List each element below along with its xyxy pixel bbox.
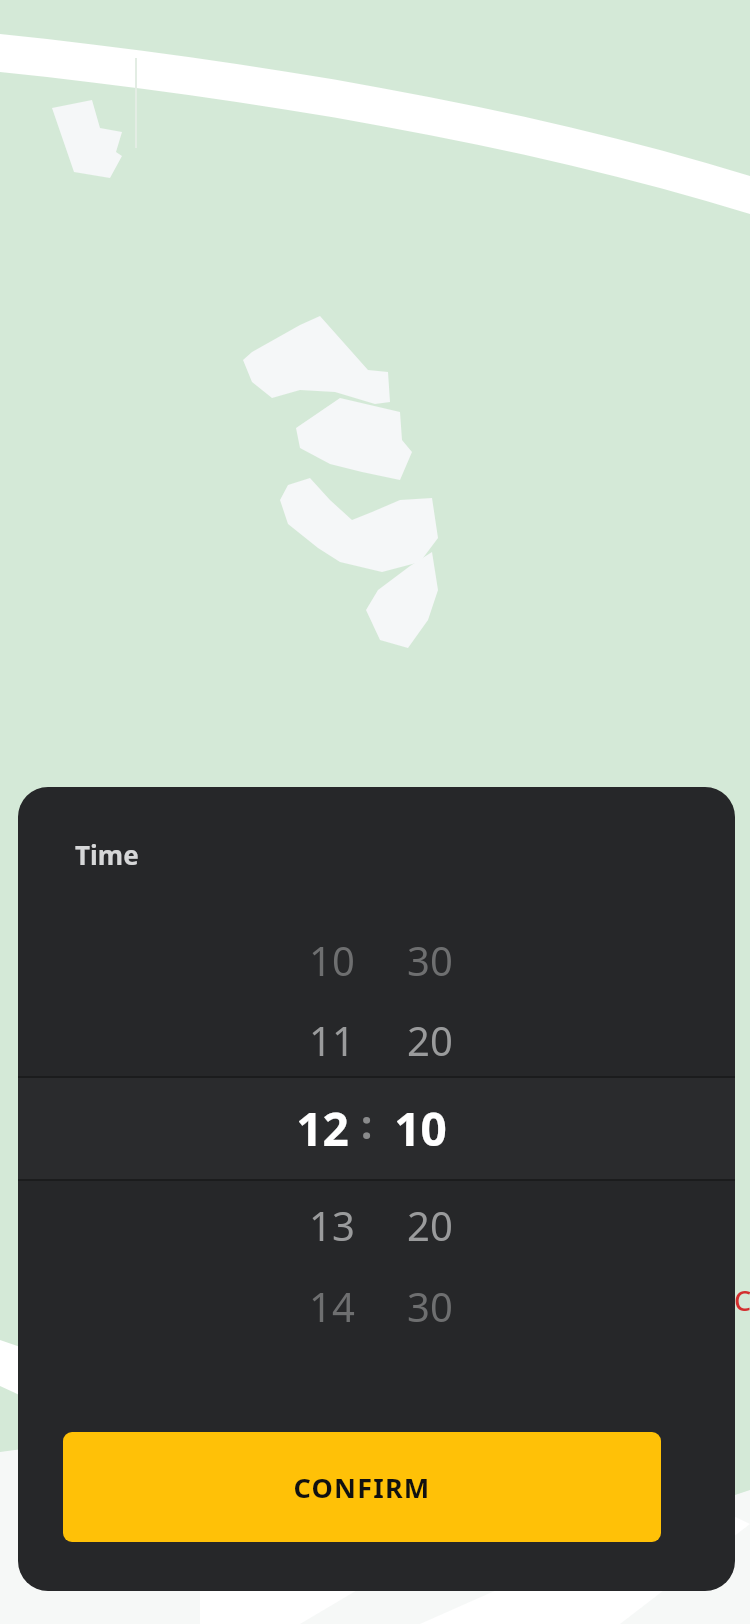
button[interactable]: 20 (391, 1010, 469, 1070)
staticText: 12 (296, 1097, 349, 1157)
staticText: Time (75, 837, 139, 872)
staticText: CANCEL (734, 1282, 750, 1319)
staticText: 20 (407, 1013, 453, 1067)
button[interactable]: 11 (293, 1010, 371, 1070)
button[interactable]: 12 (283, 1097, 361, 1157)
button[interactable]: 10 (293, 930, 371, 990)
button[interactable]: 20 (391, 1195, 469, 1255)
staticText: 14 (309, 1279, 355, 1333)
staticText: CONFIRM (293, 1469, 431, 1506)
staticText: 30 (407, 1279, 453, 1333)
button[interactable]: 30 (391, 930, 469, 990)
button[interactable]: Cancel (734, 1282, 750, 1319)
staticText: 10 (309, 933, 355, 987)
button[interactable]: 13 (293, 1195, 371, 1255)
staticText: 20 (407, 1198, 453, 1252)
staticText: 13 (309, 1198, 355, 1252)
button[interactable]: CONFIRM (63, 1432, 661, 1542)
staticText: 11 (309, 1013, 355, 1067)
staticText: 10 (394, 1097, 447, 1157)
button[interactable]: 30 (391, 1276, 469, 1336)
button[interactable]: 10 (381, 1097, 459, 1157)
staticText: 30 (407, 933, 453, 987)
staticText: : (361, 1096, 373, 1150)
button[interactable]: 14 (293, 1276, 371, 1336)
